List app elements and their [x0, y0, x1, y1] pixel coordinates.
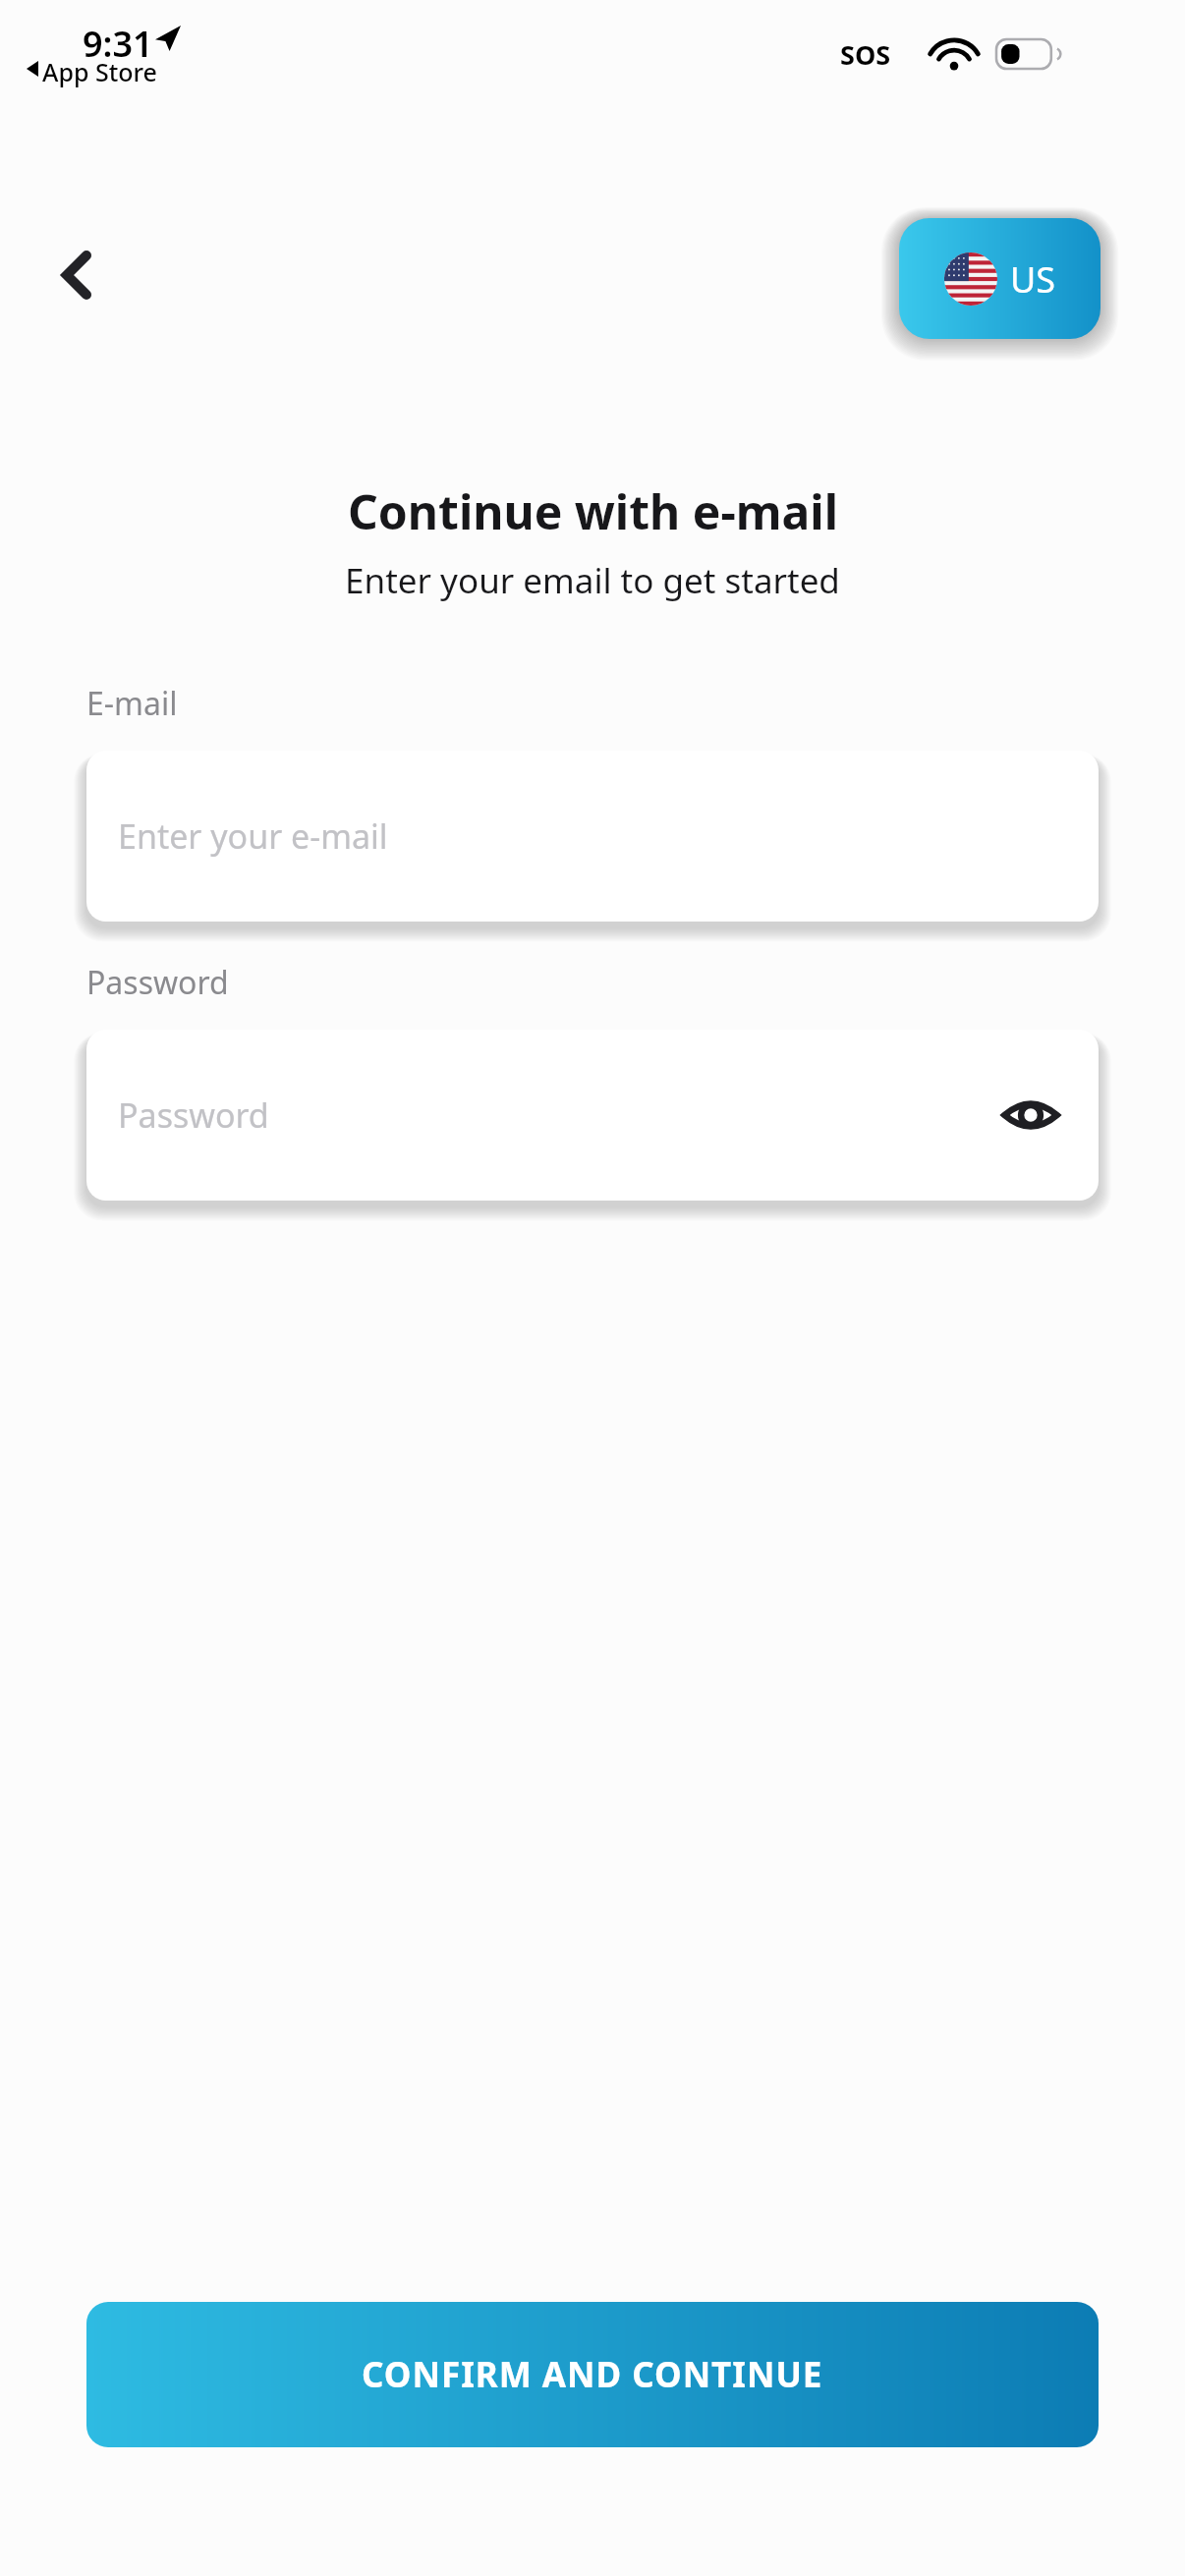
button[interactable]: Enter your e-mail: [86, 751, 1099, 922]
staticText: E-mail: [86, 682, 178, 725]
staticText: US: [1010, 255, 1056, 304]
staticText: Password: [86, 961, 229, 1004]
staticText: App Store: [42, 55, 157, 88]
button[interactable]: Show password: [994, 1079, 1067, 1151]
staticText: Enter your e-mail: [118, 813, 1067, 859]
button[interactable]: CONFIRM AND CONTINUE: [86, 2302, 1099, 2447]
staticText: CONFIRM AND CONTINUE: [362, 2351, 823, 2398]
staticText: Continue with e-mail: [348, 479, 838, 543]
button[interactable]: Back: [37, 236, 116, 314]
staticText: SOS: [840, 36, 891, 73]
staticText: 9:31: [83, 20, 153, 68]
button[interactable]: Password: [86, 1030, 1099, 1201]
staticText: Enter your email to get started: [345, 557, 840, 604]
staticText: Password: [118, 1092, 994, 1138]
button[interactable]: US: [899, 218, 1100, 339]
